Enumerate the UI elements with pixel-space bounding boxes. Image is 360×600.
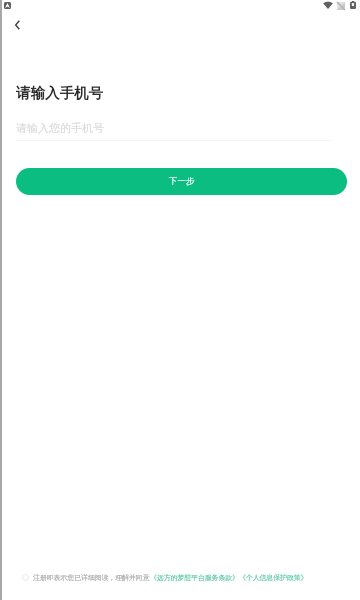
button[interactable]: 《远方的梦想平台服务条款》 <box>150 573 239 582</box>
staticText: 请输入手机号 <box>16 84 103 102</box>
staticText: 注册即表示您已详细阅读，理解并同意 <box>33 573 150 582</box>
staticText: 请输入您的手机号 <box>16 121 104 135</box>
button[interactable]: Agree to terms checkbox <box>22 574 29 581</box>
button[interactable]: 下一步 <box>16 168 347 195</box>
button[interactable]: 《个人信息保护政策》 <box>239 573 308 582</box>
button[interactable]: Back <box>6 14 28 36</box>
staticText: 下一步 <box>169 176 195 187</box>
button[interactable]: 请输入您的手机号 <box>16 116 333 141</box>
